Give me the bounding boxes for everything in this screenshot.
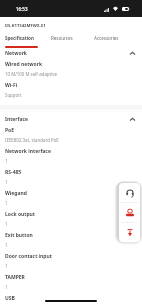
staticText: Accessories	[94, 35, 119, 41]
staticText: Support	[5, 92, 22, 98]
staticText: RS-485	[5, 169, 22, 176]
staticText: 1	[5, 221, 8, 227]
staticText: 1	[5, 158, 8, 164]
staticText: 16:53	[16, 6, 28, 12]
staticText: Door contact input	[5, 253, 52, 260]
staticText: PoE	[5, 127, 15, 134]
staticText: 1	[5, 242, 8, 248]
staticText: Wi-Fi	[5, 82, 18, 89]
staticText: TAMPER	[5, 274, 25, 281]
staticText: IEEE802.3at, standard PoE	[5, 137, 59, 143]
button[interactable]: Download	[119, 223, 140, 242]
staticText: Resources	[51, 35, 73, 41]
staticText: 1	[5, 200, 8, 206]
button[interactable]: Network	[5, 50, 135, 57]
button[interactable]: Support	[119, 183, 140, 202]
staticText: 1	[5, 284, 8, 290]
staticText: Network	[5, 50, 27, 57]
staticText: Specification	[5, 35, 34, 41]
staticText: Interface	[5, 116, 29, 123]
button[interactable]: Specification	[5, 35, 34, 41]
staticText: Exit button	[5, 232, 33, 239]
staticText: DS-K1T342MFWX-E1	[5, 23, 46, 29]
button[interactable]: Resources	[51, 35, 73, 41]
staticText: Wired network	[5, 61, 43, 68]
staticText: 10 M/100 M self-adaptive	[5, 71, 57, 77]
staticText: 1	[5, 263, 8, 269]
button[interactable]: Accessories	[94, 35, 119, 41]
staticText: USB	[5, 295, 15, 302]
staticText: Lock output	[5, 211, 36, 218]
staticText: Wiegand	[5, 190, 27, 197]
button[interactable]: Interface	[5, 116, 135, 123]
staticText: Network interface	[5, 148, 51, 155]
staticText: 1	[5, 179, 8, 185]
button[interactable]: Compare	[119, 203, 140, 222]
